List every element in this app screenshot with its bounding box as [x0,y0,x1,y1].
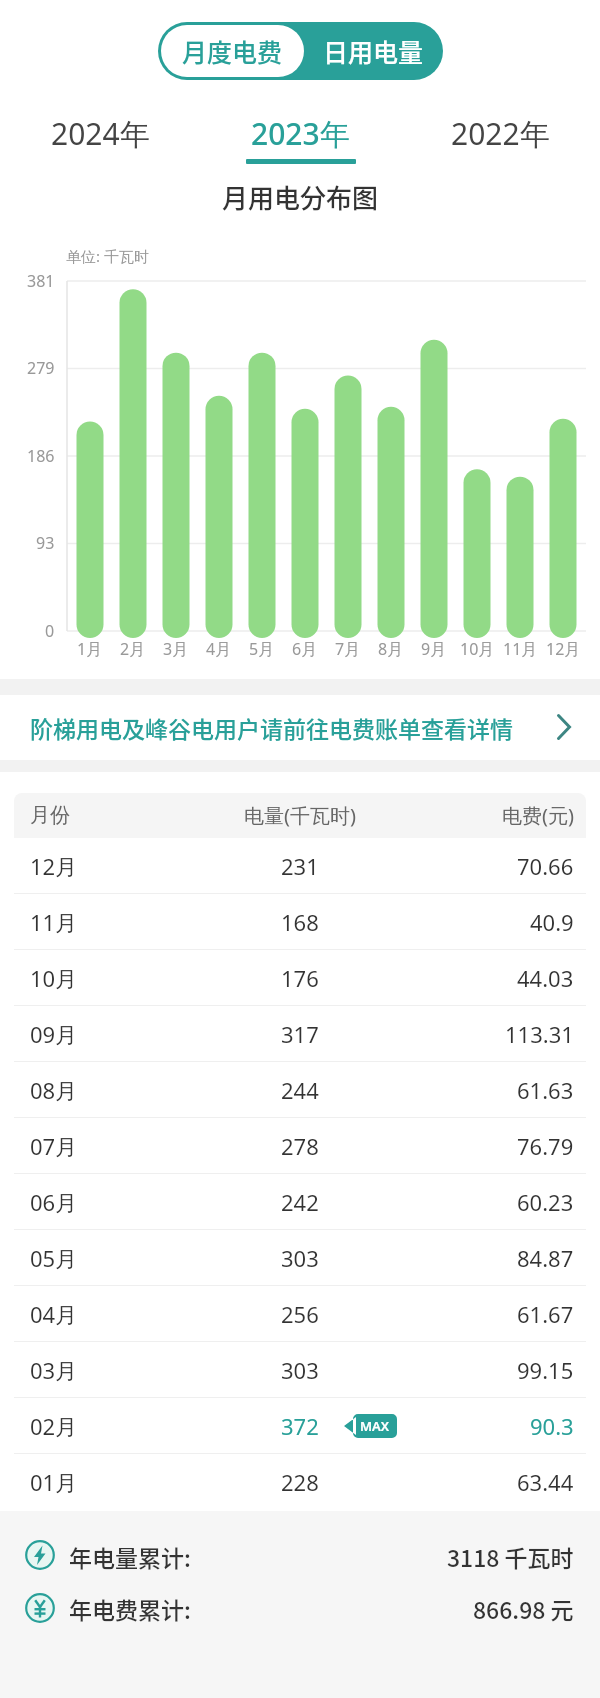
staticText: MAX [360,1417,390,1435]
staticText: 231 [281,851,319,881]
staticText: 电费(元) [502,802,574,829]
staticText: 176 [281,963,319,993]
staticText: 381 [27,270,55,292]
staticText: 12月 [546,638,581,660]
button[interactable]: 08月 [14,1062,586,1118]
staticText: 04月 [30,1299,78,1329]
staticText: 44.03 [517,963,574,993]
staticText: 6月 [292,638,318,660]
button[interactable]: 06月 [14,1174,586,1230]
staticText: 256 [281,1299,319,1329]
staticText: 月用电分布图 [222,178,379,216]
staticText: 02月 [30,1411,78,1441]
staticText: 05月 [30,1243,78,1273]
staticText: 07月 [30,1131,78,1161]
staticText: 93 [36,532,55,554]
staticText: 03月 [30,1355,78,1385]
staticText: 12月 [30,851,78,881]
staticText: 月份 [30,803,70,828]
staticText: 317 [281,1019,319,1049]
staticText: 4月 [206,638,232,660]
staticText: 09月 [30,1019,78,1049]
staticText: 303 [281,1355,319,1385]
button[interactable]: 2022年 [400,108,600,158]
staticText: 年电费累计: [69,1592,191,1625]
staticText: 40.9 [530,907,574,937]
staticText: 1月 [77,638,103,660]
staticText: 228 [281,1467,319,1497]
button[interactable]: 2024年 [0,108,200,158]
button[interactable]: 07月 [14,1118,586,1174]
button[interactable]: 04月 [14,1286,586,1342]
staticText: 372 [281,1411,319,1441]
staticText: 60.23 [517,1187,574,1217]
button[interactable]: 阶梯用电及峰谷电用户请前往电费账单查看详情 [0,695,600,760]
staticText: 99.15 [517,1355,574,1385]
staticText: 278 [281,1131,319,1161]
staticText: 11月 [30,907,78,937]
staticText: 01月 [30,1467,78,1497]
staticText: 08月 [30,1075,78,1105]
button[interactable]: 10月 [14,950,586,1006]
button[interactable]: 月度电费 [161,25,304,77]
staticText: 113.31 [505,1019,574,1049]
staticText: 单位: 千瓦时 [66,246,149,266]
button[interactable]: 02月 [14,1398,586,1454]
staticText: 61.63 [517,1075,574,1105]
staticText: 186 [27,445,55,467]
staticText: 日用电量 [323,33,424,69]
staticText: 2022年 [451,113,550,154]
staticText: 303 [281,1243,319,1273]
staticText: 3118 千瓦时 [447,1540,574,1573]
button[interactable]: 11月 [14,894,586,950]
staticText: 63.44 [517,1467,574,1497]
staticText: 7月 [335,638,361,660]
button[interactable]: 2023年 [200,108,400,158]
button[interactable]: 03月 [14,1342,586,1398]
staticText: 242 [281,1187,319,1217]
staticText: 10月 [30,963,78,993]
staticText: 866.98 元 [473,1592,574,1625]
staticText: 0 [45,620,55,642]
staticText: 11月 [503,638,538,660]
staticText: 9月 [421,638,447,660]
staticText: 2023年 [251,113,350,154]
staticText: 76.79 [517,1131,574,1161]
staticText: 电量(千瓦时) [244,802,356,829]
staticText: 5月 [249,638,275,660]
staticText: 06月 [30,1187,78,1217]
staticText: 2月 [120,638,146,660]
button[interactable]: 05月 [14,1230,586,1286]
staticText: 70.66 [517,851,574,881]
staticText: 年电量累计: [69,1540,191,1573]
staticText: 阶梯用电及峰谷电用户请前往电费账单查看详情 [30,711,513,744]
button[interactable]: 12月 [14,838,586,894]
button[interactable]: 01月 [14,1454,586,1510]
staticText: 84.87 [517,1243,574,1273]
staticText: 61.67 [517,1299,574,1329]
staticText: 3月 [163,638,189,660]
button[interactable]: 09月 [14,1006,586,1062]
staticText: 月度电费 [182,33,283,69]
staticText: 244 [281,1075,319,1105]
staticText: 8月 [378,638,404,660]
staticText: 2024年 [51,113,150,154]
staticText: 10月 [460,638,495,660]
staticText: 90.3 [530,1411,574,1441]
staticText: 168 [281,907,319,937]
staticText: 279 [27,357,55,379]
button[interactable]: 日用电量 [304,22,443,80]
